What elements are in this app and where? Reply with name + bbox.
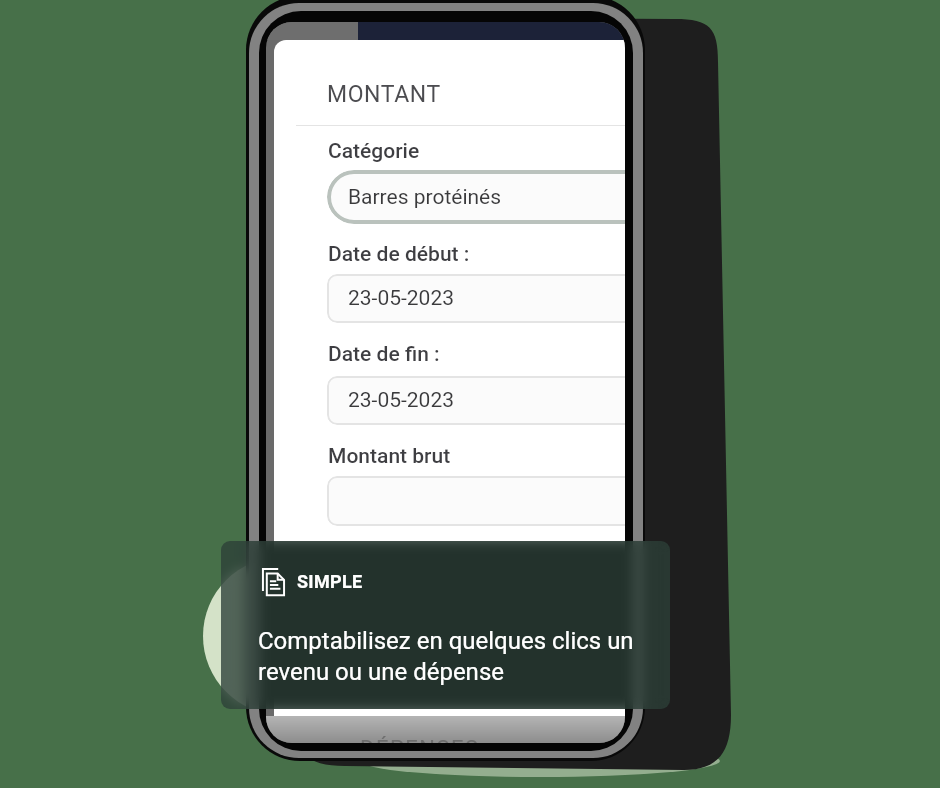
- button[interactable]: 23-05-2023: [327, 274, 625, 323]
- staticText: 23-05-2023: [348, 388, 455, 413]
- staticText: Comptabilisez en quelques clics un reven…: [258, 627, 634, 686]
- staticText: SIMPLE: [297, 571, 363, 592]
- staticText: Date de début :: [328, 242, 470, 267]
- button[interactable]: DÉPENSES: [221, 541, 670, 709]
- staticText: Catégorie: [328, 139, 420, 164]
- staticText: 23-05-2023: [348, 286, 455, 311]
- button[interactable]: Barres protéinés: [327, 170, 625, 224]
- staticText: DÉPENSES: [360, 736, 480, 743]
- staticText: Barres protéinés: [348, 185, 502, 210]
- staticText: MONTANT: [327, 81, 441, 108]
- staticText: Date de fin :: [328, 342, 440, 367]
- button[interactable]: [327, 476, 625, 526]
- other: Documents: [262, 568, 285, 596]
- staticText: Montant brut: [328, 444, 451, 469]
- button[interactable]: 23-05-2023: [327, 376, 625, 425]
